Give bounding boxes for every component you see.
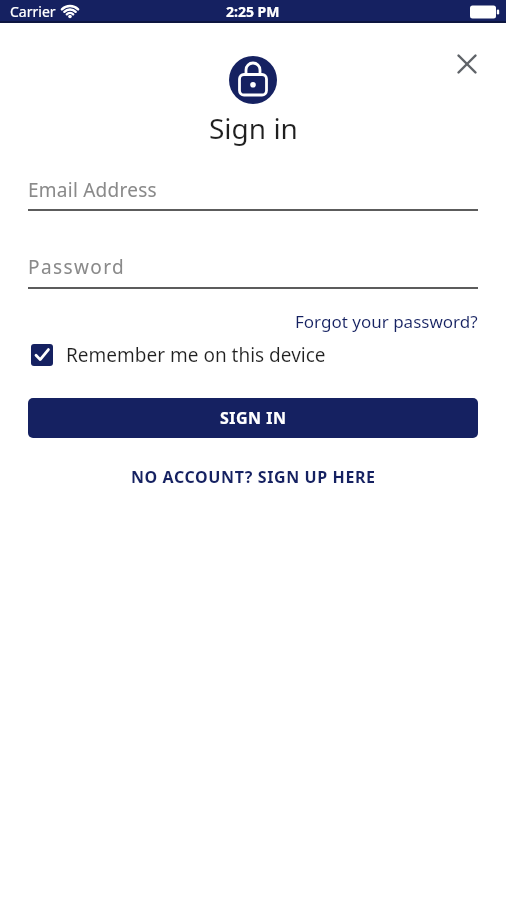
button[interactable]: NO ACCOUNT? SIGN UP HERE xyxy=(131,466,376,488)
button[interactable]: Remember me on this device xyxy=(28,342,478,368)
button[interactable]: Forgot your password? xyxy=(295,310,478,333)
staticText: Remember me on this device xyxy=(66,342,326,368)
staticText: 2:25 PM xyxy=(226,2,280,21)
staticText: Sign in xyxy=(209,109,298,147)
staticText: Password xyxy=(28,254,126,280)
staticText: Carrier xyxy=(10,2,56,21)
staticText: SIGN IN xyxy=(220,407,287,429)
button[interactable]: SIGN IN xyxy=(28,398,478,438)
button[interactable] xyxy=(451,48,483,80)
staticText: Email Address xyxy=(28,177,157,203)
